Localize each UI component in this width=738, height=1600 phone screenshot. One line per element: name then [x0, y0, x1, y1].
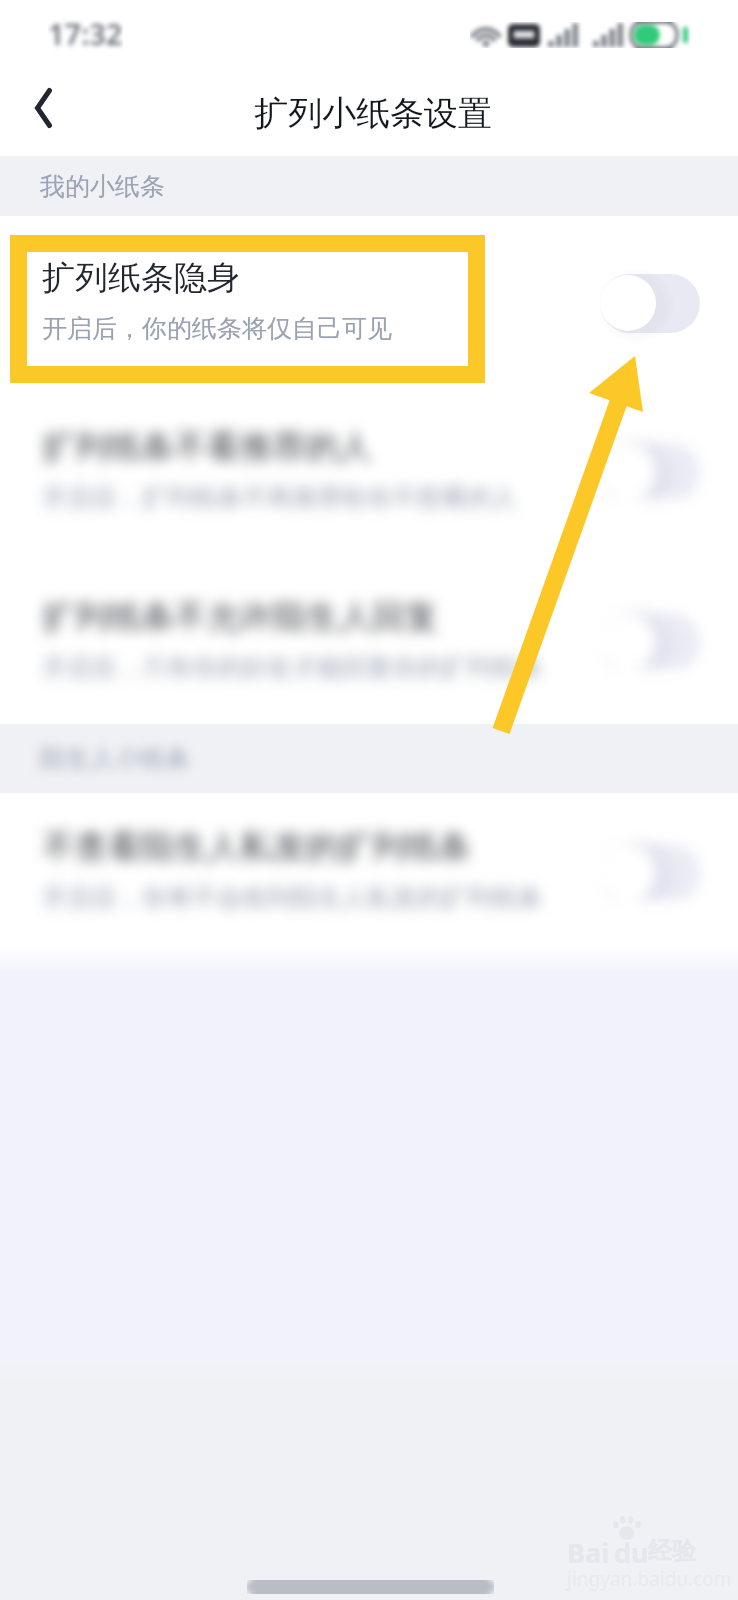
staticText: 不查看陌生人私发的扩列纸条 [42, 826, 471, 868]
staticText: 扩列小纸条设置 [254, 92, 492, 135]
staticText: 开启后，扩列纸条不再推荐给你不想看的人 [42, 482, 517, 513]
staticText: 17:32 [48, 14, 123, 53]
button[interactable]: 扩列纸条隐身 [0, 216, 738, 384]
staticText: du [614, 1534, 649, 1571]
staticText: 开启后，你将不会收到陌生人私发的扩列纸条 [42, 882, 542, 913]
staticText: 经验 [648, 1536, 696, 1566]
button[interactable]: Toggle [600, 270, 700, 330]
staticText: 扩列纸条不允许陌生人回复 [42, 596, 438, 638]
button[interactable]: 不查看陌生人私发的扩列纸条 [0, 793, 738, 946]
button[interactable]: 扩列纸条不看推荐的人 [0, 384, 738, 554]
staticText: 陌生人小纸条 [40, 743, 190, 774]
staticText: 扩列纸条不看推荐的人 [42, 426, 372, 468]
button[interactable]: Toggle [600, 609, 700, 669]
button[interactable]: Toggle [600, 439, 700, 499]
staticText: 我的小纸条 [40, 171, 165, 202]
staticText: 开启后，你的纸条将仅自己可见 [42, 313, 392, 344]
staticText: Bai [567, 1534, 610, 1571]
button[interactable]: Toggle [600, 840, 700, 900]
button[interactable]: Back [0, 70, 86, 146]
button[interactable]: 扩列纸条不允许陌生人回复 [0, 554, 738, 724]
staticText: 扩列纸条隐身 [42, 257, 240, 299]
staticText: 开启后，只有你的好友才能回复你的扩列纸条 [42, 652, 542, 683]
